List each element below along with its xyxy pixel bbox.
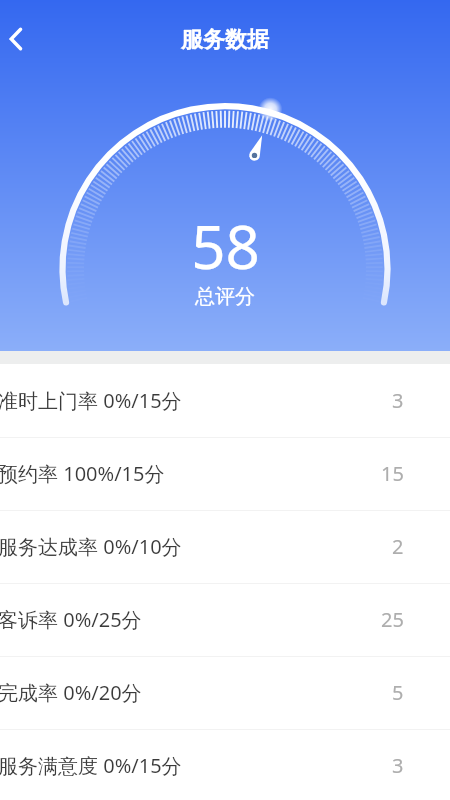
staticText: 5 [392, 679, 404, 706]
staticText: 15 [381, 460, 404, 487]
staticText: 服务满意度 0%/15分 [0, 752, 182, 779]
button[interactable]: 完成率 0%/20分 [0, 656, 450, 729]
staticText: 预约率 100%/15分 [0, 460, 165, 487]
button[interactable]: 服务满意度 0%/15分 [0, 729, 450, 800]
staticText: 服务达成率 0%/10分 [0, 533, 182, 560]
staticText: 3 [392, 752, 404, 779]
staticText: 3 [392, 387, 404, 414]
button[interactable]: 准时上门率 0%/15分 [0, 364, 450, 437]
staticText: 客诉率 0%/25分 [0, 606, 142, 633]
staticText: 总评分 [195, 284, 255, 309]
staticText: 58 [191, 205, 260, 287]
staticText: 准时上门率 0%/15分 [0, 387, 182, 414]
staticText: 服务数据 [181, 26, 269, 54]
button[interactable]: Back [0, 20, 36, 56]
staticText: 完成率 0%/20分 [0, 679, 142, 706]
button[interactable]: 客诉率 0%/25分 [0, 583, 450, 656]
staticText: 25 [381, 606, 404, 633]
button[interactable]: 预约率 100%/15分 [0, 437, 450, 510]
button[interactable]: 服务达成率 0%/10分 [0, 510, 450, 583]
staticText: 2 [392, 533, 404, 560]
